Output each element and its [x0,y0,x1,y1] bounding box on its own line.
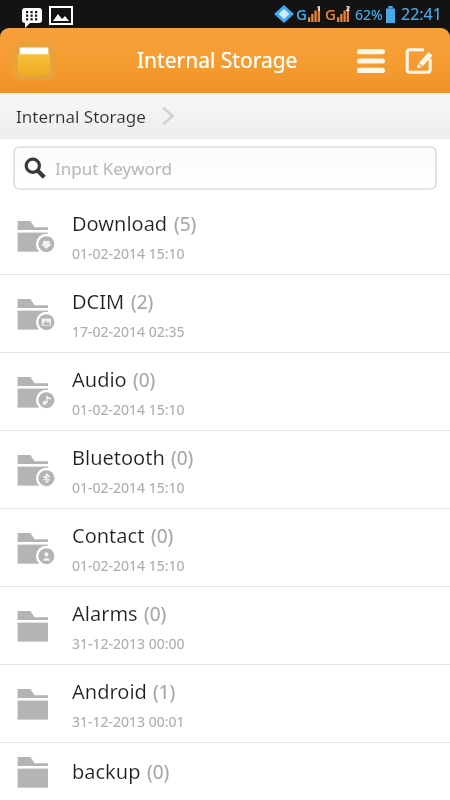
button[interactable]: Audio [0,353,450,431]
button[interactable]: Edit [398,40,440,82]
button[interactable]: Contact [0,509,450,587]
button[interactable]: backup [0,743,450,800]
button[interactable]: Input Keyword [14,147,436,189]
staticText: 62% [355,5,383,24]
staticText: Audio [72,366,127,393]
staticText: 22:41 [401,3,442,25]
staticText: G [325,4,336,24]
staticText: 17-02-2014 02:35 [72,322,185,341]
button[interactable]: Android [0,665,450,743]
staticText: Internal Storage [137,46,298,75]
staticText: Contact [72,522,145,549]
staticText: 2 [346,4,351,14]
staticText: (0) [171,445,194,471]
staticText: (0) [144,601,167,627]
staticText: Input Keyword [55,157,173,180]
staticText: 1 [317,4,322,14]
staticText: 01-02-2014 15:10 [72,244,185,263]
button[interactable]: Alarms [0,587,450,665]
staticText: Alarms [72,600,138,627]
staticText: DCIM [72,288,125,315]
staticText: (5) [174,211,197,237]
button[interactable]: DCIM [0,275,450,353]
staticText: Android [72,678,147,705]
button[interactable]: Download [0,197,450,275]
staticText: 01-02-2014 15:10 [72,400,185,419]
staticText: (1) [153,679,176,705]
staticText: Bluetooth [72,444,165,471]
staticText: backup [72,758,141,785]
button[interactable]: Storage [10,37,58,85]
button[interactable]: Bluetooth [0,431,450,509]
staticText: G [296,4,307,24]
staticText: Internal Storage [16,105,146,128]
button[interactable]: Menu [350,40,392,82]
staticText: 31-12-2013 00:01 [72,712,185,731]
staticText: 01-02-2014 15:10 [72,478,185,497]
staticText: 01-02-2014 15:10 [72,556,185,575]
staticText: (0) [133,367,156,393]
staticText: (0) [151,523,174,549]
button[interactable]: Internal Storage [0,93,450,139]
staticText: Download [72,210,168,237]
staticText: 31-12-2013 00:00 [72,634,185,653]
staticText: (0) [147,759,170,785]
staticText: (2) [131,289,154,315]
